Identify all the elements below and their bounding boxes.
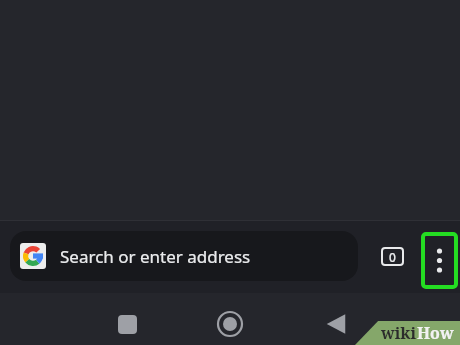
staticText: wiki: [381, 322, 417, 344]
staticText: How: [417, 322, 454, 344]
staticText: 0: [389, 249, 396, 265]
button[interactable]: Tabs: [371, 241, 413, 271]
button[interactable]: Search or enter address: [10, 231, 358, 281]
button[interactable]: Home: [206, 300, 254, 345]
button[interactable]: Back: [312, 300, 360, 345]
staticText: Search or enter address: [60, 245, 251, 268]
button[interactable]: Recent apps: [103, 300, 151, 345]
button[interactable]: More options: [421, 232, 458, 289]
